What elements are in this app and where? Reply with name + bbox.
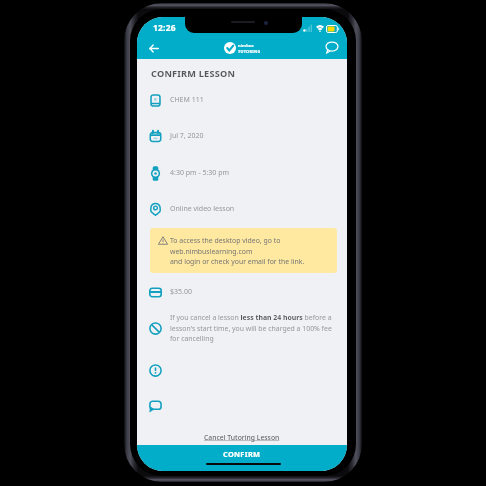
- button[interactable]: If you cancel a lesson less than 24 hour…: [149, 312, 342, 344]
- button[interactable]: CHEM 111: [149, 84, 337, 116]
- staticText: 12:26: [153, 22, 176, 34]
- button[interactable]: [149, 390, 337, 422]
- staticText: To access the desktop video, go to web.n…: [170, 236, 305, 266]
- button[interactable]: Jul 7, 2020: [149, 120, 337, 152]
- staticText: 4:30 pm - 5:30 pm: [170, 168, 230, 178]
- button[interactable]: Back: [142, 36, 166, 60]
- staticText: Online video lesson: [170, 204, 235, 214]
- button[interactable]: Cancel Tutoring Lesson: [202, 431, 282, 444]
- staticText: If you cancel a lesson less than 24 hour…: [170, 313, 342, 343]
- button[interactable]: CONFIRM: [137, 445, 347, 471]
- staticText: CHEM 111: [170, 95, 204, 105]
- button[interactable]: [149, 354, 337, 386]
- staticText: CONFIRM: [223, 449, 261, 459]
- button[interactable]: Nimbus Tutoring: [224, 42, 261, 54]
- staticText: CONFIRM LESSON: [151, 67, 236, 80]
- staticText: Jul 7, 2020: [170, 131, 204, 141]
- staticText: nimbus: [238, 43, 254, 49]
- staticText: $35.00: [170, 287, 192, 297]
- staticText: TUTORING: [238, 49, 261, 54]
- button[interactable]: $35.00: [149, 276, 337, 308]
- button[interactable]: Messages: [320, 35, 344, 59]
- button[interactable]: 4:30 pm - 5:30 pm: [149, 157, 337, 189]
- button[interactable]: Online video lesson: [149, 193, 337, 225]
